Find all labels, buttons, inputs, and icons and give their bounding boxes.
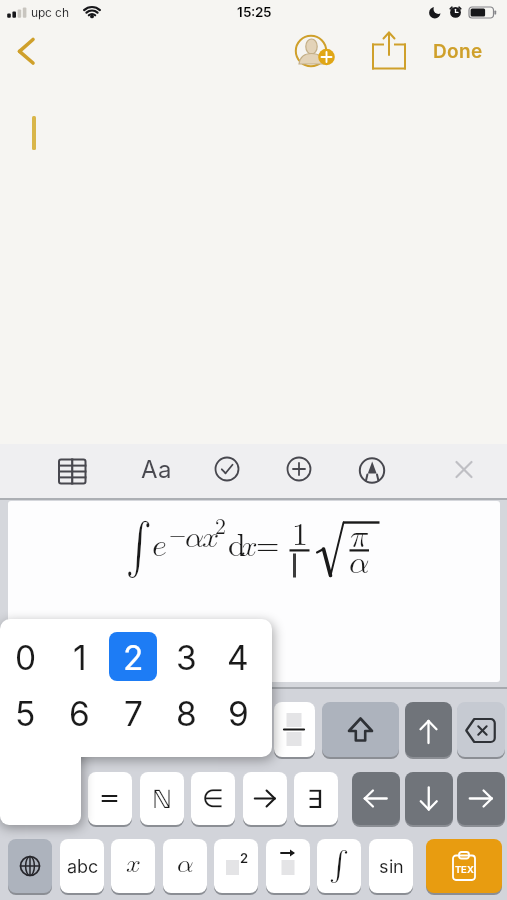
button[interactable] <box>317 839 361 893</box>
button[interactable] <box>56 450 96 490</box>
button[interactable] <box>207 450 247 490</box>
button[interactable] <box>426 839 502 893</box>
button[interactable] <box>352 772 400 825</box>
button[interactable] <box>405 772 453 825</box>
button[interactable] <box>243 772 287 825</box>
button[interactable] <box>274 702 315 757</box>
button[interactable] <box>366 30 408 72</box>
button[interactable] <box>266 839 310 893</box>
button[interactable] <box>428 36 486 66</box>
button[interactable] <box>369 839 413 893</box>
button[interactable] <box>191 772 235 825</box>
button[interactable] <box>8 34 48 70</box>
button[interactable] <box>60 839 104 893</box>
button[interactable] <box>88 772 132 825</box>
button[interactable] <box>294 772 338 825</box>
button[interactable] <box>132 450 176 490</box>
button[interactable] <box>457 702 505 757</box>
button[interactable] <box>322 702 399 757</box>
button[interactable] <box>279 450 319 490</box>
button[interactable] <box>140 772 184 825</box>
button[interactable] <box>111 839 155 893</box>
button[interactable] <box>163 839 207 893</box>
button[interactable] <box>294 32 338 70</box>
button[interactable] <box>444 450 484 490</box>
button[interactable] <box>405 702 452 757</box>
button[interactable] <box>457 772 505 825</box>
button[interactable] <box>8 839 52 893</box>
button[interactable] <box>214 839 258 893</box>
button[interactable] <box>109 632 157 681</box>
button[interactable] <box>351 450 391 490</box>
